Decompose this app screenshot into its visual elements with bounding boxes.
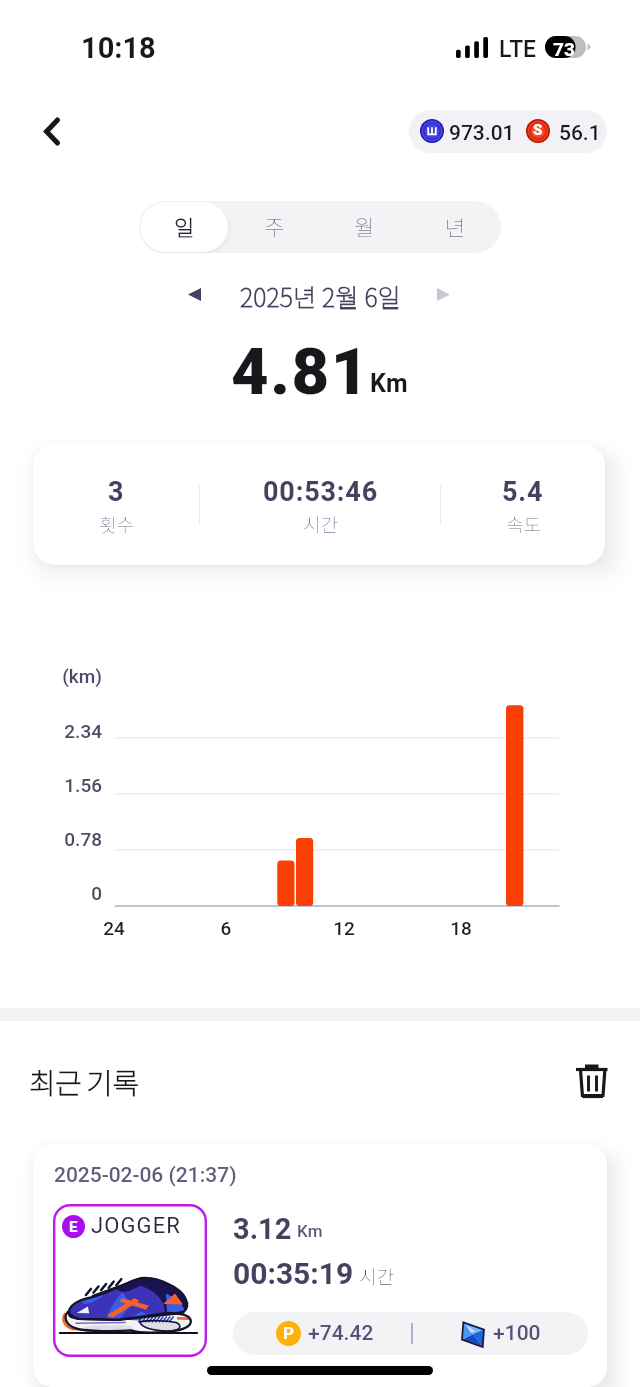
button[interactable]: Back [26,107,74,155]
button[interactable]: 2025-02-06 (21:37) [33,1144,607,1387]
button[interactable]: Next day [430,275,470,315]
staticText: 3.12 [233,1212,292,1246]
staticText: 최근 기록 [29,1060,139,1102]
staticText: 12 [304,917,384,939]
staticText: 6 [186,917,266,939]
button[interactable]: 년 [410,201,501,253]
staticText: 속도 [506,510,541,538]
staticText: 년 [445,210,466,242]
staticText: 5.4 [502,476,544,508]
staticText: 73 [553,38,575,60]
staticText: 973.01 [449,121,515,146]
staticText: S [533,121,543,139]
staticText: 24 [74,917,154,939]
staticText: 10:18 [81,31,156,65]
staticText: 2.34 [0,720,102,742]
staticText: 1.56 [0,774,102,796]
staticText: 일 [174,210,195,242]
staticText: 18 [421,917,501,939]
button[interactable]: +100 [458,1312,578,1355]
staticText: 00:35:19 [233,1256,354,1291]
button[interactable]: Previous day [170,275,210,315]
button[interactable]: 5.4 [441,444,605,565]
staticText: 시간 [359,1262,394,1290]
staticText: 2025년 2월 6일 [240,278,401,314]
staticText: P [283,1323,294,1343]
button[interactable]: Delete all records [568,1056,618,1106]
staticText: +100 [493,1321,541,1346]
staticText: 월 [354,210,375,242]
staticText: JOGGER [91,1213,181,1239]
staticText: 56.1 [559,121,601,146]
staticText: 횟수 [99,510,134,538]
staticText: 0.78 [0,828,102,850]
staticText: +74.42 [308,1321,374,1346]
staticText: 주 [264,210,285,242]
staticText: 4.81 [231,334,371,410]
staticText: Km [297,1221,323,1241]
staticText: 00:53:46 [263,476,378,508]
staticText: 3 [108,476,125,508]
staticText: (km) [0,665,102,687]
button[interactable]: 주 [229,201,319,253]
staticText: 2025-02-06 (21:37) [54,1163,237,1188]
button[interactable]: 973.01 [409,110,607,153]
button[interactable]: 일 [139,201,229,253]
button[interactable]: P [276,1312,376,1355]
button[interactable]: 3 [33,444,199,565]
staticText: E [69,1218,78,1236]
button[interactable]: 월 [319,201,410,253]
staticText: LTE [499,36,537,63]
staticText: 0 [0,882,102,904]
staticText: Km [370,369,408,398]
staticText: 시간 [303,510,338,538]
button[interactable]: 00:53:46 [200,444,440,565]
